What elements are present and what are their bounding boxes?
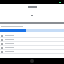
button[interactable] — [0, 34, 64, 37]
button[interactable] — [0, 42, 64, 45]
button[interactable] — [0, 46, 64, 49]
button[interactable] — [0, 38, 64, 41]
button[interactable]: Home — [30, 59, 34, 63]
button[interactable] — [0, 50, 64, 53]
